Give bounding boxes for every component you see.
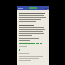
button[interactable]: Primary action [29, 7, 37, 9]
button[interactable] [19, 56, 47, 61]
button[interactable] [19, 43, 47, 44]
button[interactable]: Logo [17, 6, 49, 10]
